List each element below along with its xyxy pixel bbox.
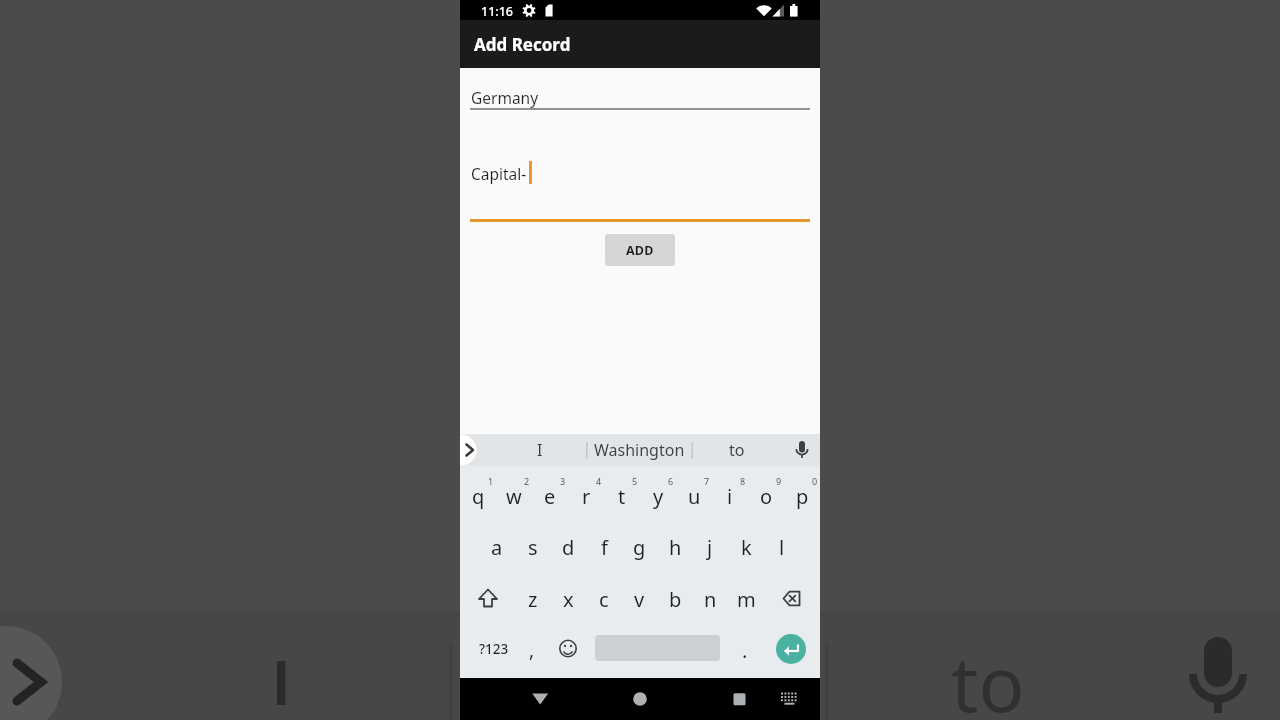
button[interactable]: b xyxy=(657,582,693,616)
button[interactable]: Washington xyxy=(589,438,689,462)
button[interactable]: r xyxy=(568,479,604,513)
staticText: t xyxy=(618,483,626,510)
staticText: n xyxy=(704,586,717,613)
button[interactable]: p xyxy=(784,479,820,513)
button[interactable]: f xyxy=(586,530,622,564)
button[interactable]: u xyxy=(676,479,712,513)
button[interactable]: w xyxy=(496,479,532,513)
staticText: to xyxy=(729,439,745,461)
staticText: u xyxy=(688,483,701,510)
button[interactable] xyxy=(626,685,654,713)
staticText: 3 xyxy=(560,475,566,487)
staticText: 7 xyxy=(704,475,710,487)
staticText: 8 xyxy=(740,475,746,487)
button[interactable]: h xyxy=(657,530,693,564)
staticText: v xyxy=(634,586,645,613)
button[interactable]: e xyxy=(532,479,568,513)
staticText: 2 xyxy=(524,475,530,487)
staticText: to xyxy=(951,631,1025,720)
staticText: i xyxy=(727,483,733,510)
staticText: 6 xyxy=(668,475,674,487)
staticText: d xyxy=(562,534,575,561)
button[interactable] xyxy=(526,685,554,713)
staticText: ADD xyxy=(626,242,654,259)
button[interactable]: , xyxy=(520,635,544,665)
button[interactable]: y xyxy=(640,479,676,513)
button[interactable]: v xyxy=(621,582,657,616)
staticText: 4 xyxy=(596,475,602,487)
button[interactable]: I xyxy=(515,438,565,462)
button[interactable] xyxy=(771,582,811,616)
staticText: Washington xyxy=(594,439,685,461)
button[interactable]: a xyxy=(479,530,515,564)
staticText: l xyxy=(779,534,785,561)
staticText: c xyxy=(599,586,609,613)
button[interactable]: . xyxy=(733,635,757,665)
staticText: s xyxy=(528,534,538,561)
button[interactable] xyxy=(790,438,814,462)
staticText: 5 xyxy=(632,475,638,487)
staticText: j xyxy=(707,534,713,561)
staticText: h xyxy=(669,534,682,561)
staticText: g xyxy=(633,534,646,561)
staticText: 11:16 xyxy=(481,3,514,19)
button[interactable]: k xyxy=(728,530,764,564)
button[interactable]: o xyxy=(748,479,784,513)
staticText: p xyxy=(796,483,809,510)
button[interactable]: g xyxy=(621,530,657,564)
staticText: Germany xyxy=(471,87,539,108)
staticText: b xyxy=(669,586,682,613)
staticText: r xyxy=(582,483,591,510)
staticText: x xyxy=(563,586,574,613)
button[interactable]: ?123 xyxy=(472,634,516,664)
staticText: I xyxy=(537,439,543,461)
button[interactable] xyxy=(776,634,806,664)
staticText: o xyxy=(760,483,773,510)
button[interactable] xyxy=(725,685,753,713)
staticText: 1 xyxy=(488,475,494,487)
button[interactable]: q xyxy=(460,479,496,513)
staticText: y xyxy=(653,483,664,510)
button[interactable]: i xyxy=(712,479,748,513)
button[interactable]: c xyxy=(586,582,622,616)
staticText: ?123 xyxy=(479,640,509,658)
button[interactable]: l xyxy=(764,530,800,564)
button[interactable]: to xyxy=(712,438,762,462)
staticText: Capital- xyxy=(471,163,527,184)
button[interactable] xyxy=(552,633,584,663)
staticText: e xyxy=(544,483,556,510)
staticText: f xyxy=(601,534,608,561)
staticText: w xyxy=(506,483,522,510)
staticText: Add Record xyxy=(474,33,571,56)
button[interactable]: m xyxy=(728,582,764,616)
button[interactable]: s xyxy=(515,530,551,564)
staticText: a xyxy=(491,534,503,561)
staticText: z xyxy=(528,586,538,613)
staticText: m xyxy=(737,586,756,613)
button[interactable]: n xyxy=(692,582,728,616)
button[interactable]: j xyxy=(692,530,728,564)
button[interactable]: x xyxy=(550,582,586,616)
button[interactable]: ADD xyxy=(605,234,675,266)
button[interactable] xyxy=(468,582,508,616)
button[interactable]: d xyxy=(550,530,586,564)
button[interactable]: z xyxy=(515,582,551,616)
staticText: k xyxy=(741,534,752,561)
button[interactable]: t xyxy=(604,479,640,513)
staticText: 9 xyxy=(776,475,782,487)
staticText: q xyxy=(472,483,485,510)
staticText: , xyxy=(529,637,535,663)
staticText: . xyxy=(742,637,748,664)
staticText: 0 xyxy=(812,475,818,487)
